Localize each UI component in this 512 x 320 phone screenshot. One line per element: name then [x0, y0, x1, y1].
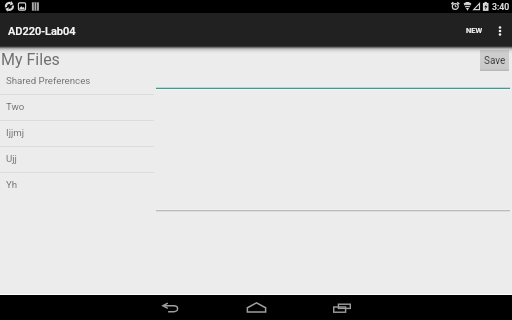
staticText: Save: [484, 55, 506, 67]
button[interactable]: Save: [480, 50, 509, 71]
button[interactable]: Ijjmj: [0, 121, 154, 147]
staticText: Ijjmj: [6, 127, 25, 138]
button[interactable]: More options: [488, 13, 512, 46]
button[interactable]: Home: [233, 295, 279, 320]
staticText: My Files: [1, 50, 60, 69]
button[interactable]: Back: [147, 295, 193, 320]
button[interactable]: Recent apps: [319, 295, 365, 320]
button[interactable]: Shared Preferences: [0, 69, 154, 95]
button[interactable]: Ujj: [0, 147, 154, 173]
staticText: 3:40: [492, 2, 510, 12]
staticText: Ujj: [6, 153, 17, 164]
staticText: Shared Preferences: [6, 75, 91, 86]
button[interactable]: Two: [0, 95, 154, 121]
button[interactable]: Yh: [0, 173, 154, 199]
staticText: Two: [6, 101, 25, 112]
button[interactable]: NEW: [455, 13, 488, 46]
staticText: AD220-Lab04: [8, 25, 76, 38]
staticText: NEW: [466, 26, 483, 35]
staticText: Yh: [6, 179, 18, 190]
